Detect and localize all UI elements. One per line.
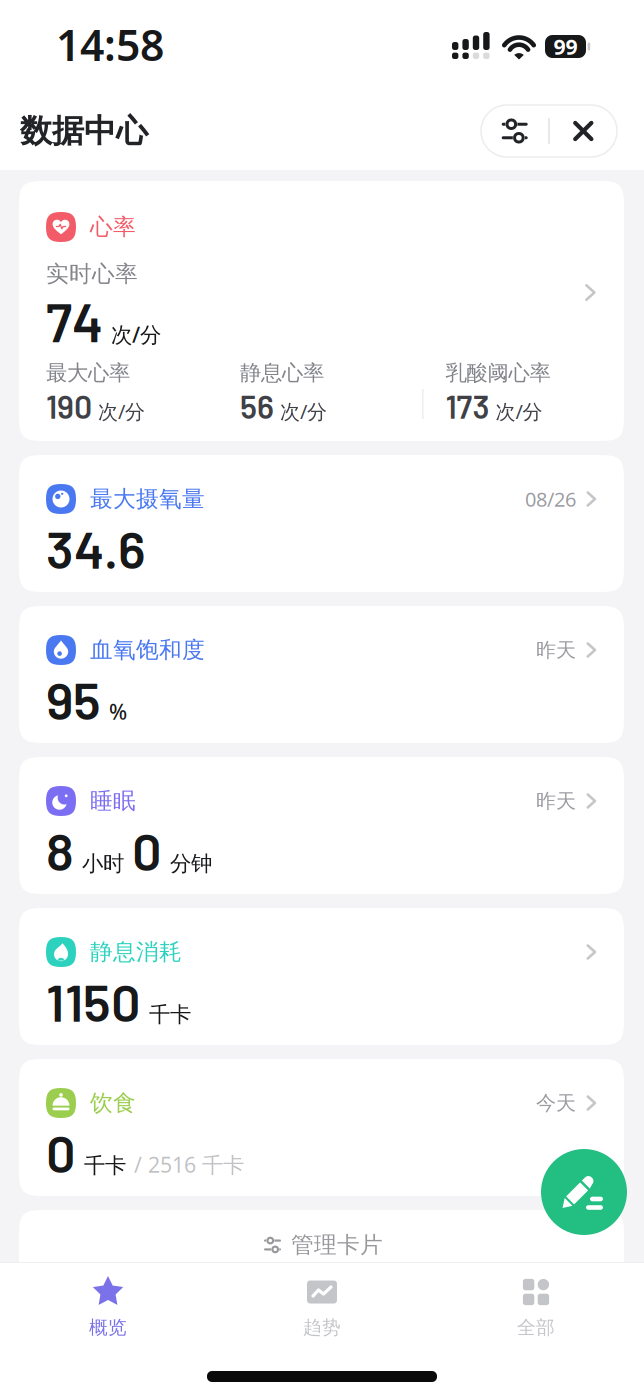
staticText: 次/分 bbox=[111, 320, 161, 348]
staticText: 08/26 bbox=[525, 486, 576, 512]
staticText: 0 bbox=[132, 819, 162, 881]
staticText: 实时心率 bbox=[46, 260, 138, 288]
button[interactable]: 心率 bbox=[19, 181, 624, 441]
staticText: 静息心率 bbox=[240, 360, 324, 386]
staticText: 昨天 bbox=[536, 789, 576, 813]
button[interactable]: 静息消耗 bbox=[19, 908, 624, 1045]
staticText: 次/分 bbox=[496, 398, 543, 425]
staticText: 0 bbox=[46, 1121, 76, 1183]
staticText: 34.6 bbox=[46, 517, 146, 579]
staticText: 最大心率 bbox=[46, 360, 130, 386]
button[interactable]: 血氧饱和度 bbox=[19, 606, 624, 743]
staticText: 睡眠 bbox=[90, 787, 136, 815]
button[interactable]: 管理卡片 bbox=[19, 1210, 624, 1330]
button[interactable]: 睡眠 bbox=[19, 757, 624, 894]
staticText: 饮食 bbox=[90, 1089, 136, 1117]
button[interactable]: 趋势 bbox=[215, 1275, 429, 1339]
staticText: 昨天 bbox=[536, 638, 576, 662]
staticText: / 2516 千卡 bbox=[134, 1150, 244, 1179]
staticText: % bbox=[109, 697, 127, 726]
button[interactable]: 饮食 bbox=[19, 1059, 624, 1196]
staticText: 千卡 bbox=[84, 1153, 126, 1179]
button[interactable]: Add record bbox=[541, 1149, 627, 1235]
staticText: 1150 bbox=[46, 970, 141, 1032]
staticText: 次/分 bbox=[98, 398, 145, 425]
staticText: 小时 bbox=[82, 851, 124, 877]
staticText: 最大摄氧量 bbox=[90, 485, 205, 513]
button[interactable]: 最大摄氧量 bbox=[19, 455, 624, 592]
staticText: 173 bbox=[446, 387, 490, 425]
staticText: 14:58 bbox=[56, 16, 164, 73]
button[interactable]: 全部 bbox=[429, 1275, 643, 1339]
staticText: 乳酸阈心率 bbox=[446, 360, 551, 386]
staticText: 心率 bbox=[90, 213, 136, 241]
button[interactable]: Filter bbox=[481, 105, 548, 157]
staticText: 56 bbox=[240, 387, 274, 425]
staticText: 99 bbox=[553, 32, 577, 61]
staticText: 次/分 bbox=[280, 398, 327, 425]
staticText: 74 bbox=[46, 289, 103, 353]
staticText: 管理卡片 bbox=[291, 1231, 383, 1259]
staticText: 概览 bbox=[89, 1316, 127, 1339]
staticText: 趋势 bbox=[303, 1316, 341, 1339]
staticText: 全部 bbox=[517, 1316, 555, 1339]
button[interactable]: Close bbox=[550, 105, 617, 157]
staticText: 千卡 bbox=[149, 1002, 191, 1028]
staticText: 分钟 bbox=[170, 851, 212, 877]
staticText: 今天 bbox=[536, 1091, 576, 1115]
staticText: 8 bbox=[46, 819, 74, 881]
staticText: 血氧饱和度 bbox=[90, 636, 205, 664]
staticText: 静息消耗 bbox=[90, 938, 182, 966]
button[interactable]: 概览 bbox=[1, 1275, 215, 1339]
staticText: 数据中心 bbox=[20, 111, 148, 151]
staticText: 95 bbox=[46, 668, 101, 730]
staticText: 190 bbox=[46, 387, 92, 425]
